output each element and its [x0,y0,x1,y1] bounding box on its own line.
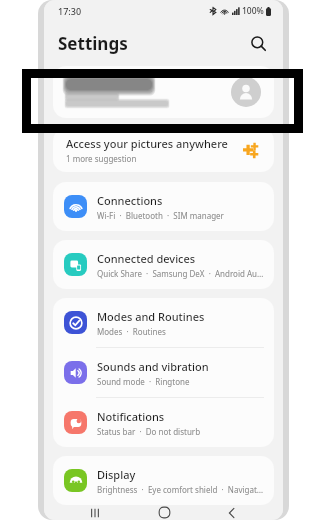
staticText: Modes · Routines [97,326,166,337]
staticText: Notifications [97,409,165,424]
staticText: Brightness · Eye comfort shield · Naviga… [97,484,264,495]
button[interactable]: Modes and Routines [53,298,274,347]
button[interactable]: Back [215,505,249,520]
button[interactable] [53,66,274,118]
staticText: Display [97,467,136,482]
button[interactable]: Display [53,456,274,505]
button[interactable]: Home [147,505,181,520]
staticText: Access your pictures anywhere [66,136,228,151]
staticText: 100% [242,5,264,17]
button[interactable]: Recents [78,505,112,520]
button[interactable]: Sounds and vibration [53,348,274,397]
button[interactable]: Access your pictures anywhere [53,128,274,172]
staticText: 1 more suggestion [66,153,137,164]
staticText: Wi-Fi · Bluetooth · SIM manager [97,210,224,221]
staticText: Quick Share · Samsung DeX · Android Auto [97,268,264,279]
staticText: Sound mode · Ringtone [97,376,190,387]
staticText: Connections [97,193,163,208]
button[interactable]: Notifications [53,398,274,447]
staticText: Connected devices [97,251,196,266]
staticText: Modes and Routines [97,309,205,324]
staticText: Settings [58,32,128,55]
button[interactable]: Connected devices [53,240,274,289]
staticText: Sounds and vibration [97,359,209,374]
staticText: 17:30 [58,5,82,17]
button[interactable]: Connections [53,182,274,231]
staticText: Status bar · Do not disturb [97,426,201,437]
button[interactable]: Search [243,28,273,58]
